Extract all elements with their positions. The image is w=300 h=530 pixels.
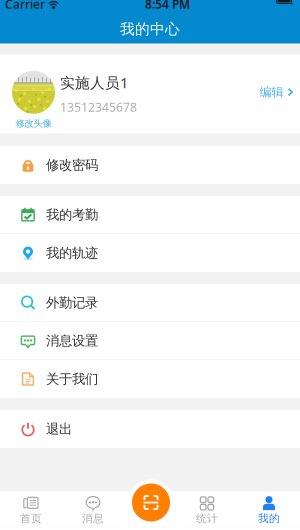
button[interactable]: 我的 [238,491,300,526]
staticText: 8:54 PM [145,0,190,12]
button[interactable]: 我的考勤 [0,196,300,234]
staticText: 首页 [20,512,42,525]
staticText: 统计 [196,512,218,525]
button[interactable]: 退出 [0,410,300,448]
staticText: 编辑 [259,85,283,99]
button[interactable]: 扫一扫 [128,479,174,525]
staticText: 我的 [258,512,280,525]
button[interactable]: 首页 [0,491,62,526]
staticText: 修改头像 [15,118,51,129]
staticText: 消息 [82,512,104,525]
button[interactable]: 修改头像 [0,54,300,133]
button[interactable]: 外勤记录 [0,284,300,322]
staticText: 我的考勤 [46,207,98,223]
staticText: 我的中心 [120,20,180,38]
staticText: 消息设置 [46,333,98,349]
staticText: 我的轨迹 [46,245,98,261]
button[interactable]: 统计 [176,491,238,526]
staticText: 外勤记录 [46,295,98,311]
button[interactable]: 关于我们 [0,360,300,398]
button[interactable]: 我的轨迹 [0,234,300,272]
button[interactable]: 消息设置 [0,322,300,360]
staticText: Carrier [5,0,45,12]
staticText: 实施人员1 [60,73,128,92]
button[interactable]: 修改密码 [0,146,300,184]
button[interactable]: 消息 [62,491,124,526]
staticText: 退出 [46,421,72,437]
staticText: 关于我们 [46,371,98,387]
staticText: 13512345678 [60,99,137,115]
staticText: 修改密码 [46,157,98,173]
